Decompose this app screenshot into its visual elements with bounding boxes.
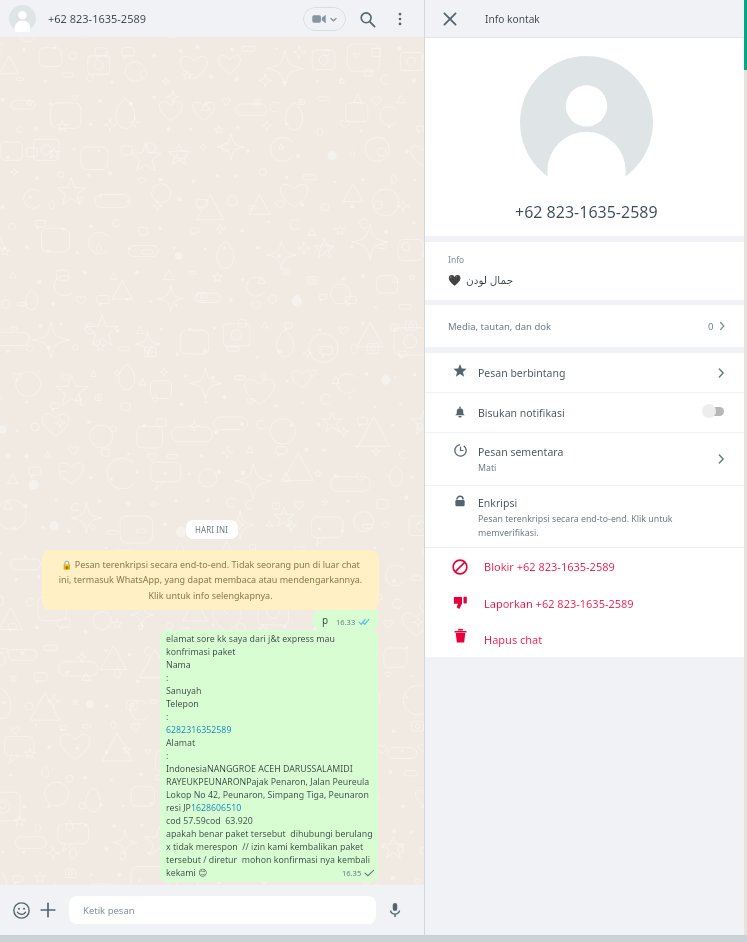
button[interactable]: Bisukan notifikasi bbox=[425, 393, 747, 432]
staticText: 🔒 Pesan terenkripsi secara end-to-end. T… bbox=[56, 558, 365, 602]
staticText: Mati bbox=[478, 462, 497, 474]
button[interactable]: Close bbox=[439, 8, 461, 30]
button[interactable]: Pesan berbintang bbox=[425, 353, 747, 392]
button[interactable]: Ketik pesan bbox=[69, 896, 376, 924]
button[interactable]: Menu bbox=[388, 7, 412, 31]
staticText: Blokir +62 823-1635-2589 bbox=[484, 559, 615, 574]
staticText: 🖤 bbox=[448, 274, 462, 286]
button[interactable]: Media, tautan, dan dok bbox=[425, 305, 747, 347]
staticText: Pesan terenkripsi secara end-to-end. Kli… bbox=[478, 513, 673, 538]
staticText: Enkripsi bbox=[478, 496, 518, 510]
staticText: Info kontak bbox=[485, 12, 540, 26]
button[interactable]: Emoji bbox=[9, 898, 33, 922]
button[interactable]: Attach bbox=[36, 898, 60, 922]
staticText: Info bbox=[448, 254, 465, 266]
staticText: HARI INI bbox=[195, 524, 229, 535]
staticText: Ketik pesan bbox=[83, 904, 135, 917]
button[interactable]: 🔒 Pesan terenkripsi secara end-to-end. T… bbox=[42, 550, 379, 610]
staticText: Laporkan +62 823-1635-2589 bbox=[484, 596, 634, 611]
staticText: p bbox=[322, 613, 329, 627]
staticText: Hapus chat bbox=[484, 632, 543, 647]
staticText: 0 bbox=[708, 320, 714, 333]
button[interactable]: Enkripsi bbox=[425, 486, 747, 547]
button[interactable]: Video call bbox=[303, 7, 346, 31]
button[interactable]: Hapus chat bbox=[425, 621, 747, 657]
button[interactable]: Laporkan +62 823-1635-2589 bbox=[425, 585, 747, 621]
staticText: Pesan berbintang bbox=[478, 366, 566, 380]
button[interactable]: Blokir +62 823-1635-2589 bbox=[425, 548, 747, 585]
button[interactable]: Voice message bbox=[383, 898, 407, 922]
staticText: +62 823-1635-2589 bbox=[48, 11, 147, 26]
staticText: Media, tautan, dan dok bbox=[448, 320, 552, 333]
staticText: elamat sore kk saya dari j&t express mau… bbox=[166, 633, 373, 879]
staticText: 16.35 bbox=[342, 868, 362, 878]
staticText: +62 823-1635-2589 bbox=[515, 201, 658, 223]
staticText: جمال لودن bbox=[466, 273, 514, 287]
button[interactable]: Pesan sementara bbox=[425, 433, 747, 485]
staticText: Pesan sementara bbox=[478, 445, 564, 459]
staticText: Bisukan notifikasi bbox=[478, 406, 565, 420]
button[interactable]: HARI INI bbox=[186, 520, 238, 539]
button[interactable]: Search bbox=[355, 7, 379, 31]
staticText: 16.33 bbox=[336, 617, 356, 627]
